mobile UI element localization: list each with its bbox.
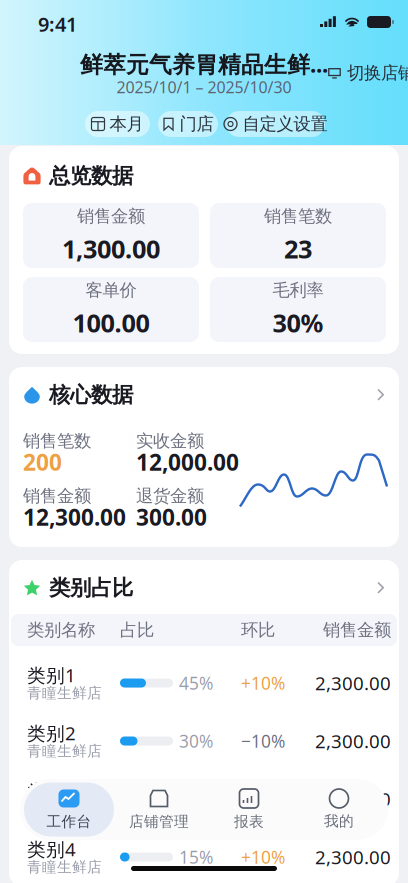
button[interactable]: 类别1 <box>27 654 391 712</box>
staticText: 30% <box>179 729 213 752</box>
staticText: +10% <box>241 845 285 868</box>
staticText: 类别4 <box>27 837 76 861</box>
staticText: 2,300.00 <box>315 787 391 811</box>
staticText: 12,300.00 <box>23 502 126 532</box>
staticText: 类别占比 <box>49 575 133 601</box>
staticText: 类别名称 <box>27 619 95 641</box>
button[interactable]: 自定义设置 <box>226 111 325 137</box>
staticText: 青瞳生鲜店 <box>27 742 102 760</box>
staticText: 2,300.00 <box>315 729 391 753</box>
staticText: 300.00 <box>136 502 207 532</box>
button[interactable]: 工作台 <box>24 782 114 836</box>
staticText: 2025/10/1 – 2025/10/30 <box>116 76 291 98</box>
staticText: 鲜萃元气养胃精品生鲜... <box>80 49 328 79</box>
staticText: 客单价 <box>85 279 136 301</box>
staticText: 45% <box>179 671 213 694</box>
staticText: 类别1 <box>27 663 76 687</box>
button[interactable]: 本月 <box>85 111 150 137</box>
button[interactable]: 类别3 <box>27 770 391 828</box>
staticText: 1,300.00 <box>62 232 160 265</box>
staticText: 退货金额 <box>136 485 204 507</box>
staticText: 青瞳生鲜店 <box>27 684 102 702</box>
staticText: −10% <box>241 729 285 752</box>
staticText: +10% <box>241 787 285 810</box>
staticText: 销售笔数 <box>264 205 332 227</box>
staticText: 23 <box>284 232 312 265</box>
button[interactable]: 类别4 <box>27 828 391 883</box>
staticText: 环比 <box>241 619 275 641</box>
staticText: 本月 <box>109 113 143 135</box>
staticText: 青瞳生鲜店 <box>27 858 102 876</box>
staticText: 工作台 <box>46 812 91 830</box>
staticText: 销售金额 <box>77 205 145 227</box>
staticText: 青瞳生鲜店 <box>27 800 102 818</box>
button[interactable]: 类别占比 <box>9 560 399 614</box>
staticText: 报表 <box>234 812 264 830</box>
staticText: 门店 <box>179 113 213 135</box>
staticText: +10% <box>241 671 285 694</box>
button[interactable]: 店铺管理 <box>114 782 204 836</box>
staticText: 占比 <box>120 619 154 641</box>
staticText: 30% <box>272 306 323 339</box>
staticText: 我的 <box>324 812 354 830</box>
staticText: 销售金额 <box>23 485 91 507</box>
button[interactable]: 核心数据 <box>23 367 385 432</box>
staticText: 店铺管理 <box>129 812 189 830</box>
button[interactable]: 门店 <box>158 111 218 137</box>
staticText: 实收金额 <box>136 430 204 452</box>
staticText: 切换店铺 <box>347 62 408 84</box>
staticText: 毛利率 <box>272 279 323 301</box>
staticText: 12,000.00 <box>136 447 239 477</box>
staticText: 销售笔数 <box>23 430 91 452</box>
staticText: 2,300.00 <box>315 845 391 869</box>
staticText: 200 <box>23 447 62 477</box>
staticText: 100.00 <box>72 306 149 339</box>
staticText: 自定义设置 <box>242 113 327 135</box>
staticText: 类别3 <box>27 779 76 803</box>
button[interactable]: 切换店铺 <box>328 63 406 83</box>
staticText: 2,300.00 <box>315 671 391 695</box>
staticText: 15% <box>179 845 213 868</box>
staticText: 核心数据 <box>49 382 133 408</box>
staticText: 总览数据 <box>49 163 133 189</box>
staticText: 9:41 <box>38 11 77 37</box>
staticText: 类别2 <box>27 721 76 745</box>
button[interactable]: 报表 <box>204 782 294 836</box>
button[interactable]: 类别2 <box>27 712 391 770</box>
staticText: 销售金额 <box>323 619 391 641</box>
button[interactable]: 我的 <box>294 782 384 836</box>
